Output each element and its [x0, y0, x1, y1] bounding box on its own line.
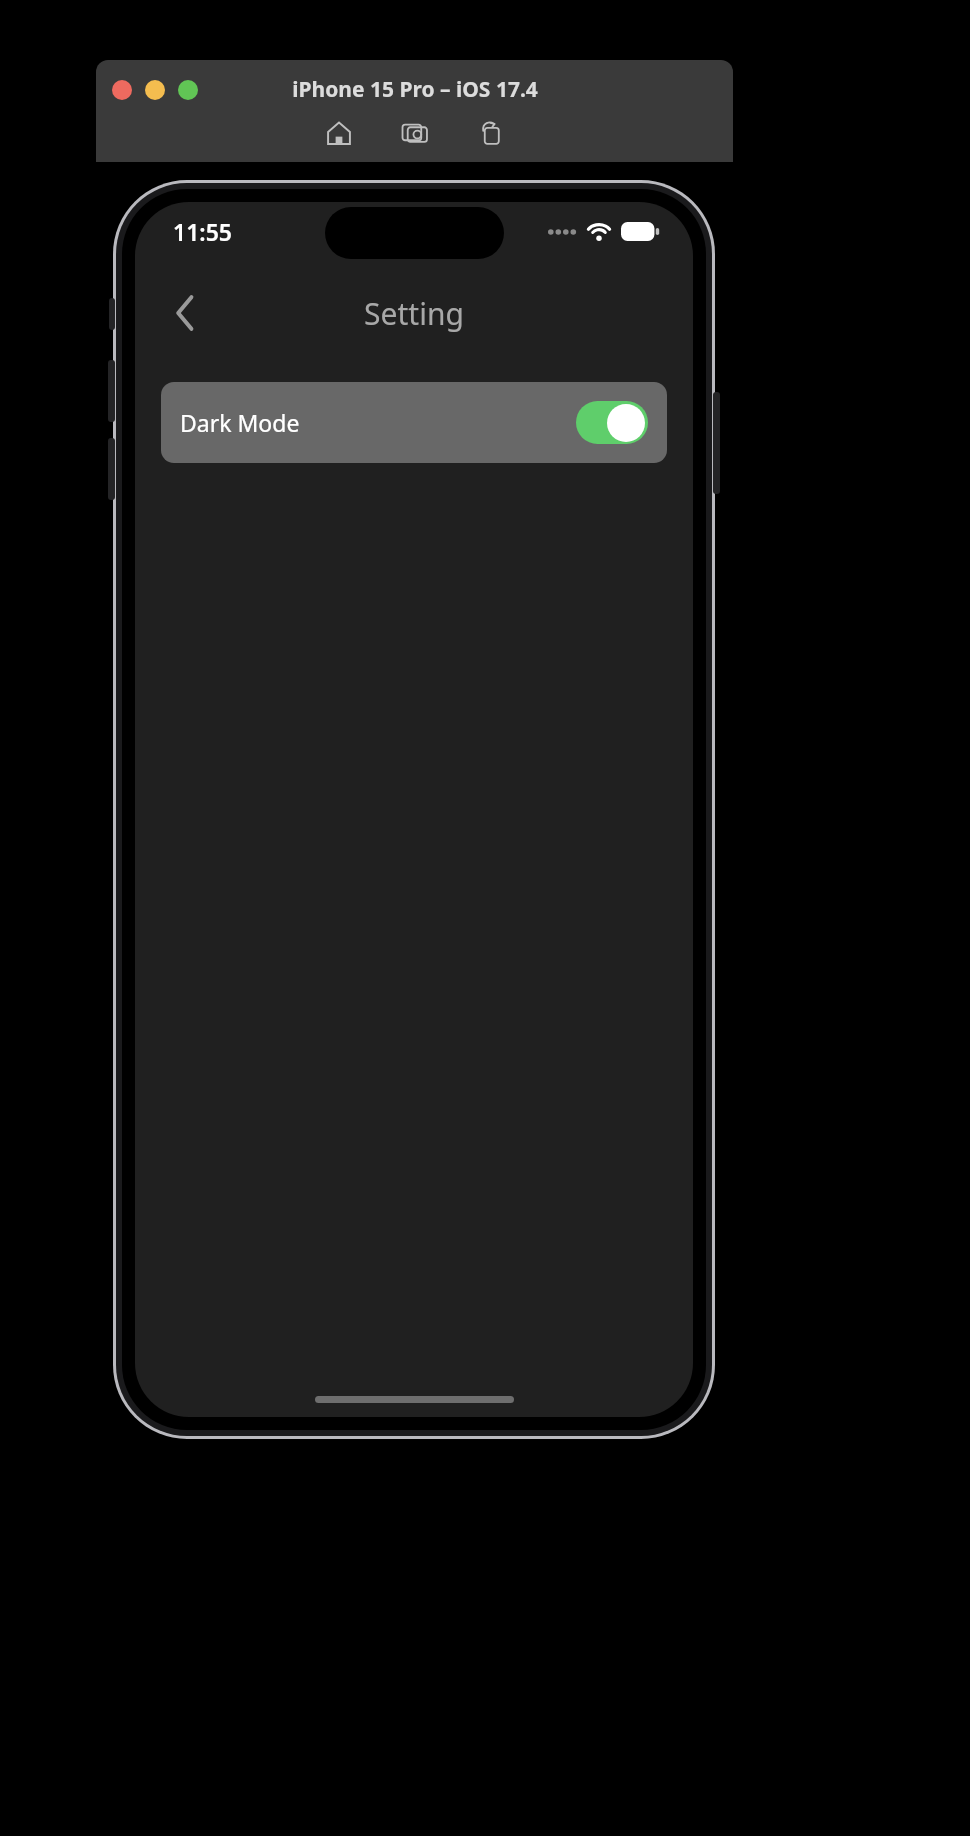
button[interactable]: Back [159, 287, 211, 339]
button[interactable]: Screenshot [398, 116, 432, 150]
staticText: Setting [364, 293, 464, 334]
button[interactable]: Rotate [474, 116, 508, 150]
staticText: 11:55 [173, 216, 232, 247]
button[interactable]: Dark Mode [161, 382, 667, 463]
button[interactable]: Window control [145, 80, 165, 100]
button[interactable]: Window control [178, 80, 198, 100]
staticText: Dark Mode [180, 407, 300, 438]
button[interactable]: Window control [112, 80, 132, 100]
button[interactable]: Dark Mode toggle, on [576, 401, 648, 444]
button[interactable]: Home [322, 116, 356, 150]
staticText: iPhone 15 Pro – iOS 17.4 [292, 75, 538, 104]
